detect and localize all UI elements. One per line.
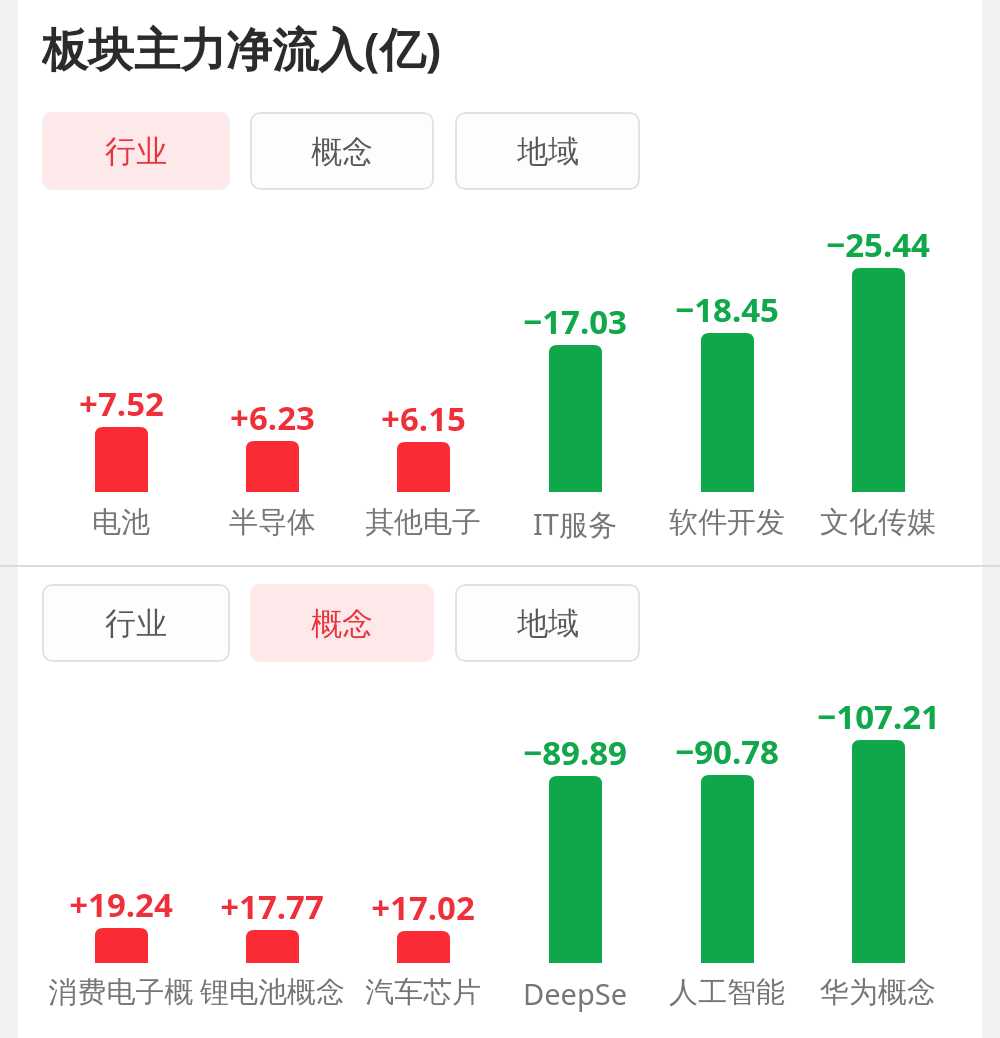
button[interactable]: 电池 bbox=[46, 504, 196, 548]
staticText: −107.21 bbox=[817, 694, 940, 738]
staticText: 华为概念 bbox=[820, 974, 936, 1011]
staticText: 板块主力净流入(亿) bbox=[42, 17, 442, 75]
staticText: −89.89 bbox=[523, 730, 627, 774]
staticText: +17.77 bbox=[220, 884, 324, 928]
staticText: −17.03 bbox=[523, 299, 627, 343]
staticText: +7.52 bbox=[79, 381, 164, 425]
button[interactable]: 人工智能 bbox=[651, 974, 803, 1018]
button[interactable]: 华为概念 bbox=[802, 974, 954, 1018]
staticText: 软件开发 bbox=[669, 504, 785, 541]
button[interactable]: 行业 bbox=[42, 112, 230, 190]
staticText: 行业 bbox=[105, 604, 167, 643]
staticText: 人工智能 bbox=[669, 974, 785, 1011]
button[interactable]: 其他电子 bbox=[348, 504, 498, 548]
staticText: +6.23 bbox=[230, 395, 315, 439]
staticText: 地域 bbox=[517, 132, 579, 171]
staticText: +17.02 bbox=[371, 885, 475, 929]
staticText: 锂电池概念 bbox=[200, 974, 345, 1011]
button[interactable]: 地域 bbox=[455, 584, 640, 662]
staticText: DeepSe bbox=[523, 974, 627, 1013]
button[interactable]: 文化传媒 bbox=[803, 504, 953, 548]
button[interactable]: 概念 bbox=[250, 584, 434, 662]
staticText: −90.78 bbox=[675, 729, 779, 773]
staticText: 行业 bbox=[105, 132, 167, 171]
staticText: IT服务 bbox=[533, 504, 617, 544]
staticText: 汽车芯片 bbox=[365, 974, 481, 1011]
staticText: 文化传媒 bbox=[820, 504, 936, 541]
button[interactable]: 行业 bbox=[42, 584, 230, 662]
button[interactable]: 半导体 bbox=[197, 504, 347, 548]
button[interactable]: 地域 bbox=[455, 112, 640, 190]
button[interactable]: 概念 bbox=[250, 112, 434, 190]
staticText: 其他电子 bbox=[365, 504, 481, 541]
staticText: +19.24 bbox=[69, 882, 173, 926]
button[interactable]: 板块主力净流入(亿) bbox=[42, 17, 442, 75]
staticText: +6.15 bbox=[381, 396, 466, 440]
staticText: 概念 bbox=[311, 132, 373, 171]
staticText: 消费电子概念 bbox=[45, 974, 197, 1011]
staticText: 地域 bbox=[517, 604, 579, 643]
button[interactable]: 软件开发 bbox=[652, 504, 802, 548]
staticText: −18.45 bbox=[675, 287, 779, 331]
staticText: 半导体 bbox=[229, 504, 316, 541]
staticText: 电池 bbox=[92, 504, 150, 541]
button[interactable]: IT服务 bbox=[500, 504, 650, 548]
button[interactable]: DeepSe bbox=[499, 974, 651, 1018]
staticText: 概念 bbox=[311, 604, 373, 643]
button[interactable]: 锂电池概念 bbox=[196, 974, 348, 1018]
button[interactable]: 消费电子概念 bbox=[45, 974, 197, 1018]
staticText: −25.44 bbox=[826, 222, 930, 266]
button[interactable]: 汽车芯片 bbox=[347, 974, 499, 1018]
